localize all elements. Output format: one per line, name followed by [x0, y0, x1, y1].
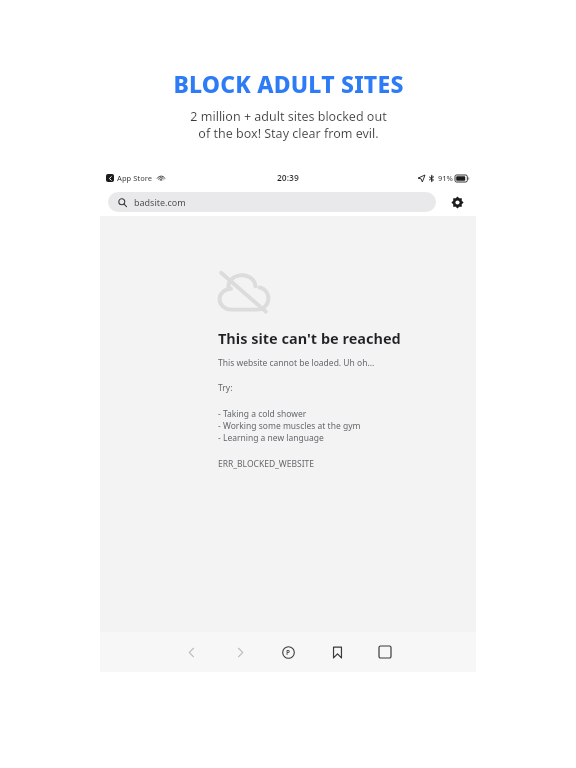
staticText: ERR_BLOCKED_WEBSITE [218, 458, 315, 470]
button[interactable]: Tabs [372, 639, 398, 665]
staticText: This site can't be reached [218, 328, 401, 348]
button[interactable]: Forward [227, 639, 253, 665]
staticText: badsite.com [134, 196, 186, 208]
button[interactable]: Reader [275, 639, 301, 665]
staticText: 91% [438, 173, 453, 183]
button[interactable]: badsite.com [108, 192, 436, 212]
staticText: App Store [117, 173, 153, 183]
staticText: 2 million + adult sites blocked out of t… [190, 108, 387, 142]
staticText: P [286, 648, 291, 657]
button[interactable]: Bookmarks [324, 639, 350, 665]
staticText: This website cannot be loaded. Uh oh... [218, 357, 375, 369]
staticText: 20:39 [277, 172, 299, 184]
staticText: Try: [218, 382, 233, 394]
button[interactable]: Settings [446, 191, 468, 213]
button[interactable]: Back [178, 639, 204, 665]
staticText: BLOCK ADULT SITES [173, 68, 404, 99]
staticText: - Taking a cold shower - Working some mu… [218, 408, 361, 444]
